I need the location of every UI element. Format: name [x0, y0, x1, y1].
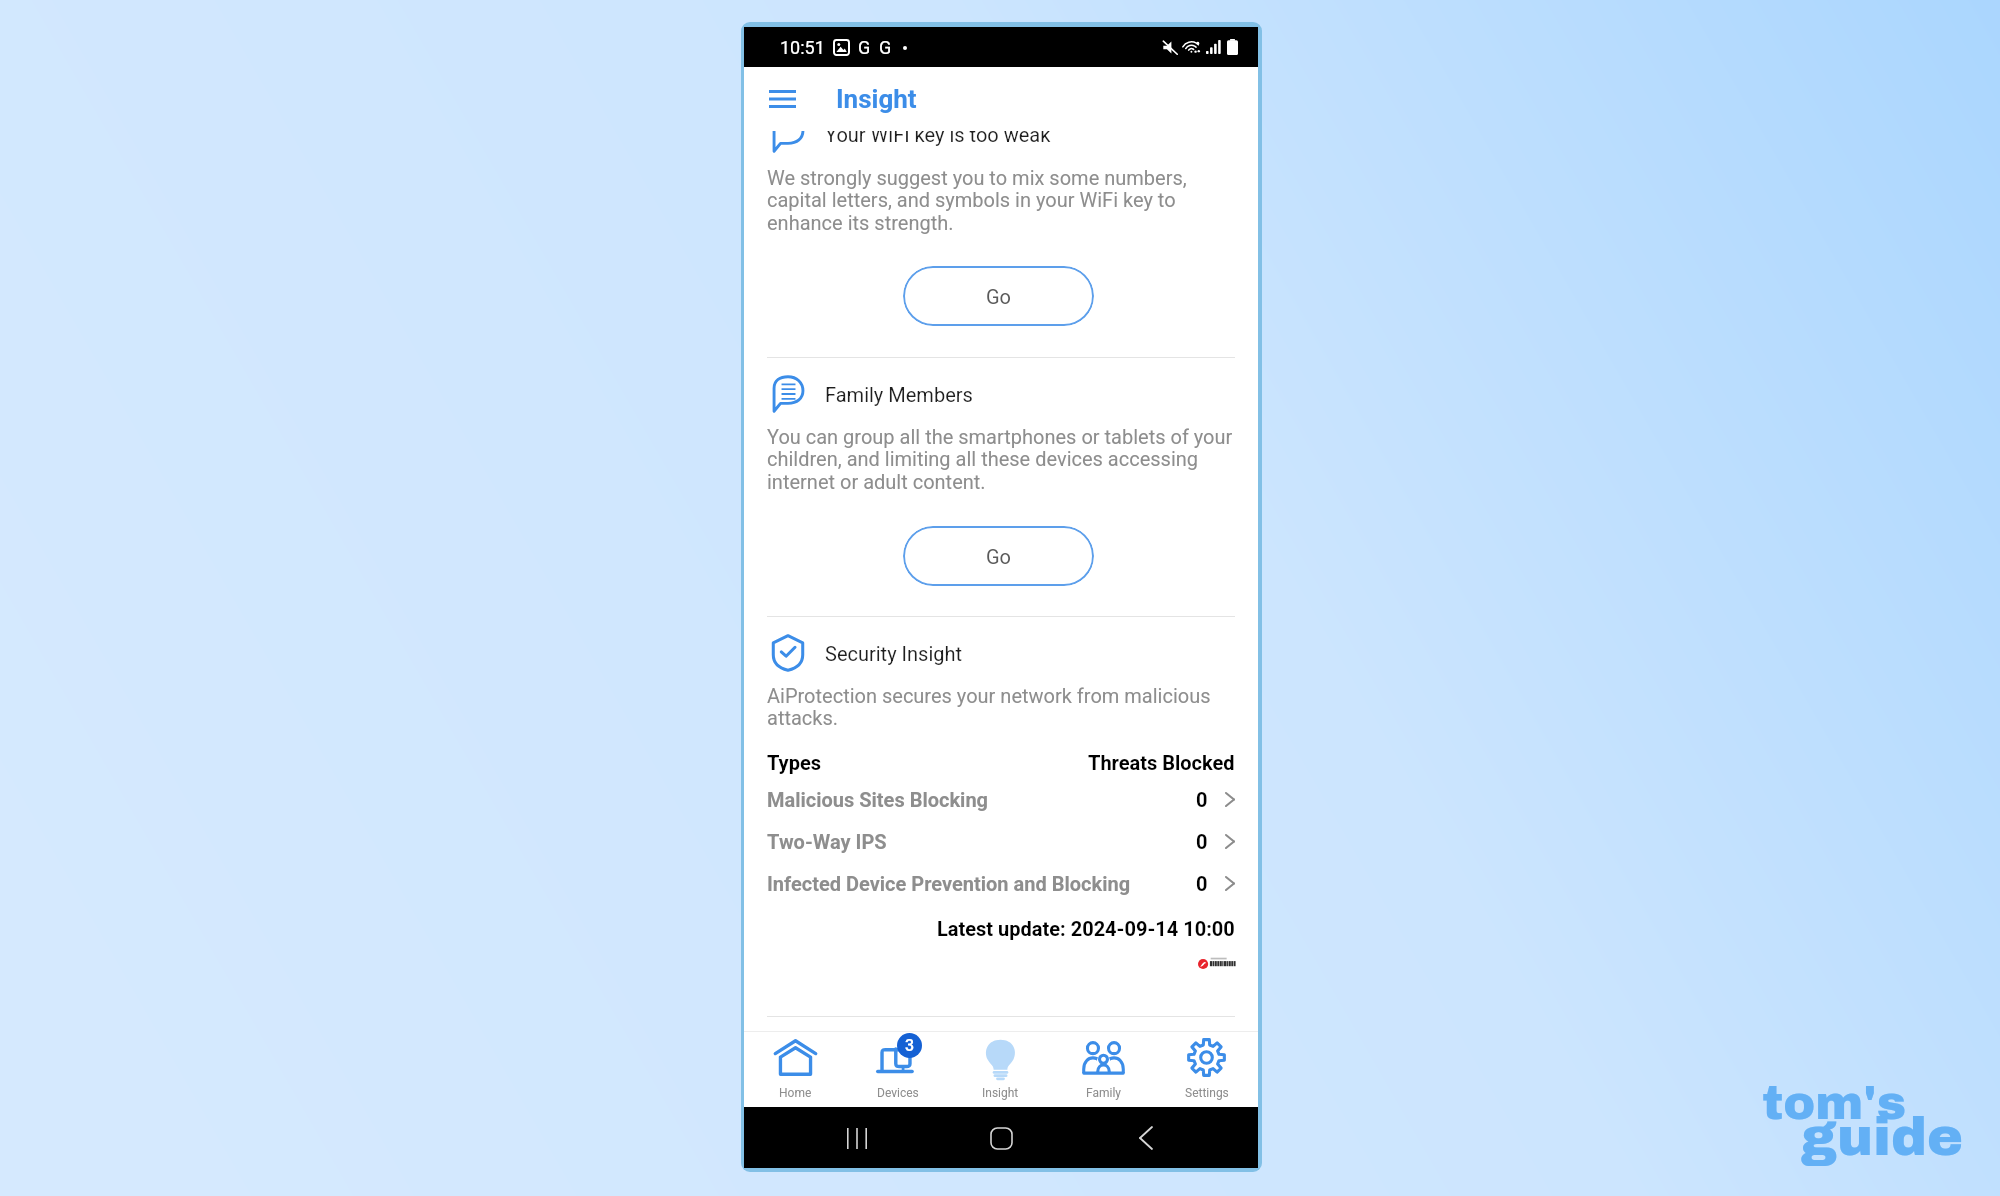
staticText: Go [986, 545, 1012, 568]
button[interactable]: 3 [846, 1031, 949, 1107]
staticText: Threats Blocked [1088, 751, 1235, 774]
staticText: guide [1801, 1108, 1964, 1167]
staticText: 0 [1196, 830, 1208, 853]
button[interactable]: Home [744, 1031, 846, 1107]
staticText: Devices [877, 1086, 919, 1100]
button[interactable]: Recent apps [835, 1116, 879, 1160]
staticText: Latest update: 2024-09-14 10:00 [937, 917, 1235, 940]
button[interactable]: Malicious Sites Blocking [744, 778, 1258, 820]
staticText: Security Insight [825, 642, 963, 665]
staticText: Types [767, 751, 822, 774]
staticText: You can group all the smartphones or tab… [767, 425, 1235, 494]
staticText: Go [986, 285, 1012, 308]
staticText: Your WiFI key is too weak [825, 131, 1051, 146]
button[interactable]: Go [903, 266, 1094, 326]
staticText: Two-Way IPS [767, 830, 887, 853]
staticText: G [879, 37, 892, 58]
staticText: AiProtection secures your network from m… [767, 684, 1235, 730]
button[interactable]: Open navigation menu [766, 83, 798, 115]
staticText: tom's [1762, 1077, 1907, 1129]
staticText: Family [1086, 1086, 1121, 1100]
staticText: Home [779, 1086, 812, 1100]
staticText: 0 [1196, 788, 1208, 811]
button[interactable]: Settings [1155, 1031, 1258, 1107]
button[interactable]: Infected Device Prevention and Blocking [744, 862, 1258, 904]
button[interactable]: Family [1052, 1031, 1155, 1107]
staticText: 10:51 [780, 37, 825, 58]
staticText: Family Members [825, 383, 973, 406]
button[interactable]: Home [979, 1116, 1023, 1160]
staticText: G [858, 37, 871, 58]
button[interactable]: Two-Way IPS [744, 820, 1258, 862]
staticText: Insight [836, 84, 917, 114]
staticText: Settings [1185, 1086, 1229, 1100]
staticText: Infected Device Prevention and Blocking [767, 872, 1131, 895]
staticText: Insight [982, 1086, 1019, 1100]
staticText: Malicious Sites Blocking [767, 788, 989, 811]
staticText: 3 [905, 1036, 915, 1055]
staticText: We strongly suggest you to mix some numb… [767, 166, 1235, 235]
button[interactable]: Go [903, 526, 1094, 586]
staticText: 0 [1196, 872, 1208, 895]
button[interactable]: Back [1124, 1116, 1168, 1160]
button[interactable]: Insight [949, 1031, 1052, 1107]
